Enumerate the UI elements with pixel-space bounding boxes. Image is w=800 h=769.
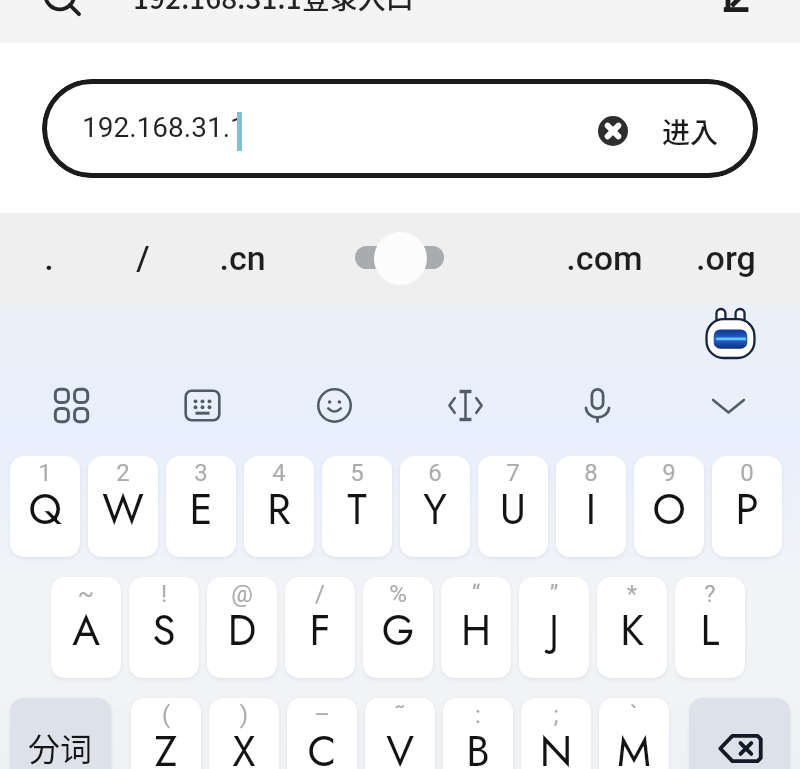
button[interactable]: – — [287, 698, 357, 769]
staticText: .org — [696, 238, 756, 278]
staticText: Q — [10, 479, 80, 540]
staticText: R — [244, 479, 314, 540]
button[interactable]: .cn — [200, 213, 284, 303]
staticText: 5 — [322, 459, 392, 487]
staticText: ~ — [51, 580, 121, 608]
button[interactable]: 2 — [88, 456, 158, 557]
staticText: U — [478, 479, 548, 540]
button[interactable]: ( — [131, 698, 201, 769]
button[interactable]: Text editing — [431, 371, 499, 439]
button[interactable]: AI assistant — [700, 303, 760, 363]
staticText: .cn — [219, 238, 266, 278]
staticText: – — [287, 701, 357, 729]
button[interactable]: Emoji — [300, 371, 368, 439]
staticText: 6 — [400, 459, 470, 487]
button[interactable]: .org — [670, 213, 782, 303]
button[interactable]: @ — [207, 577, 277, 678]
button[interactable]: .com — [552, 213, 656, 303]
button[interactable]: ˜ — [365, 698, 435, 769]
button[interactable]: 5 — [322, 456, 392, 557]
staticText: F — [285, 600, 355, 661]
staticText: L — [675, 600, 745, 661]
button[interactable]: 9 — [634, 456, 704, 557]
staticText: / — [136, 238, 150, 278]
staticText: B — [443, 721, 513, 769]
staticText: 2 — [88, 459, 158, 487]
button[interactable]: ? — [675, 577, 745, 678]
button[interactable]: ” — [519, 577, 589, 678]
staticText: 9 — [634, 459, 704, 487]
staticText: W — [88, 479, 158, 540]
button[interactable]: 1 — [10, 456, 80, 557]
button[interactable]: 8 — [556, 456, 626, 557]
staticText: ” — [519, 580, 589, 608]
button[interactable]: 192.168.31.1 — [42, 79, 758, 178]
staticText: Y — [400, 479, 470, 540]
button[interactable]: More options — [37, 371, 105, 439]
staticText: ; — [521, 701, 591, 729]
button[interactable]: Backspace — [689, 698, 790, 769]
button[interactable]: 4 — [244, 456, 314, 557]
staticText: V — [365, 721, 435, 769]
button[interactable]: Exit full screen — [707, 0, 773, 18]
staticText: 进入 — [662, 111, 719, 152]
staticText: 7 — [478, 459, 548, 487]
staticText: 3 — [166, 459, 236, 487]
staticText: / — [285, 580, 355, 608]
button[interactable]: 6 — [400, 456, 470, 557]
button[interactable]: 分词 — [10, 698, 111, 769]
button[interactable]: 进入 — [662, 79, 758, 178]
button[interactable]: ` — [599, 698, 669, 769]
staticText: E — [166, 479, 236, 540]
staticText: 192.168.31.1登录入口 — [133, 0, 414, 18]
button[interactable]: . — [18, 213, 80, 303]
button[interactable]: * — [597, 577, 667, 678]
button[interactable]: 3 — [166, 456, 236, 557]
staticText: G — [363, 600, 433, 661]
staticText: O — [634, 479, 704, 540]
staticText: C — [287, 721, 357, 769]
staticText: 0 — [712, 459, 782, 487]
button[interactable]: ; — [521, 698, 591, 769]
staticText: J — [519, 600, 589, 661]
staticText: .com — [566, 238, 643, 278]
button[interactable]: Clear text — [587, 105, 639, 157]
staticText: ? — [675, 580, 745, 608]
staticText: % — [363, 580, 433, 608]
staticText: M — [599, 721, 669, 769]
button[interactable]: Hide keyboard — [694, 371, 762, 439]
button[interactable]: 7 — [478, 456, 548, 557]
button[interactable]: “ — [441, 577, 511, 678]
staticText: 分词 — [28, 724, 93, 769]
staticText: N — [521, 721, 591, 769]
staticText: 4 — [244, 459, 314, 487]
staticText: I — [556, 479, 626, 540]
staticText: 8 — [556, 459, 626, 487]
staticText: ( — [131, 701, 201, 729]
button[interactable]: ~ — [51, 577, 121, 678]
button[interactable]: / — [112, 213, 174, 303]
staticText: Z — [131, 721, 201, 769]
button[interactable]: ! — [129, 577, 199, 678]
staticText: “ — [441, 580, 511, 608]
staticText: . — [44, 238, 54, 278]
staticText: A — [51, 600, 121, 661]
button[interactable]: ) — [209, 698, 279, 769]
button[interactable]: % — [363, 577, 433, 678]
button[interactable]: / — [285, 577, 355, 678]
staticText: K — [597, 600, 667, 661]
staticText: : — [443, 701, 513, 729]
staticText: 1 — [10, 459, 80, 487]
staticText: ! — [129, 580, 199, 608]
staticText: * — [597, 580, 667, 608]
staticText: D — [207, 600, 277, 661]
button[interactable]: Search — [30, 0, 96, 20]
button[interactable]: 0 — [712, 456, 782, 557]
button[interactable]: Voice input — [563, 371, 631, 439]
staticText: H — [441, 600, 511, 661]
staticText: ` — [599, 701, 669, 729]
staticText: X — [209, 721, 279, 769]
button[interactable]: : — [443, 698, 513, 769]
button[interactable]: Keyboard layout — [168, 371, 236, 439]
staticText: P — [712, 479, 782, 540]
